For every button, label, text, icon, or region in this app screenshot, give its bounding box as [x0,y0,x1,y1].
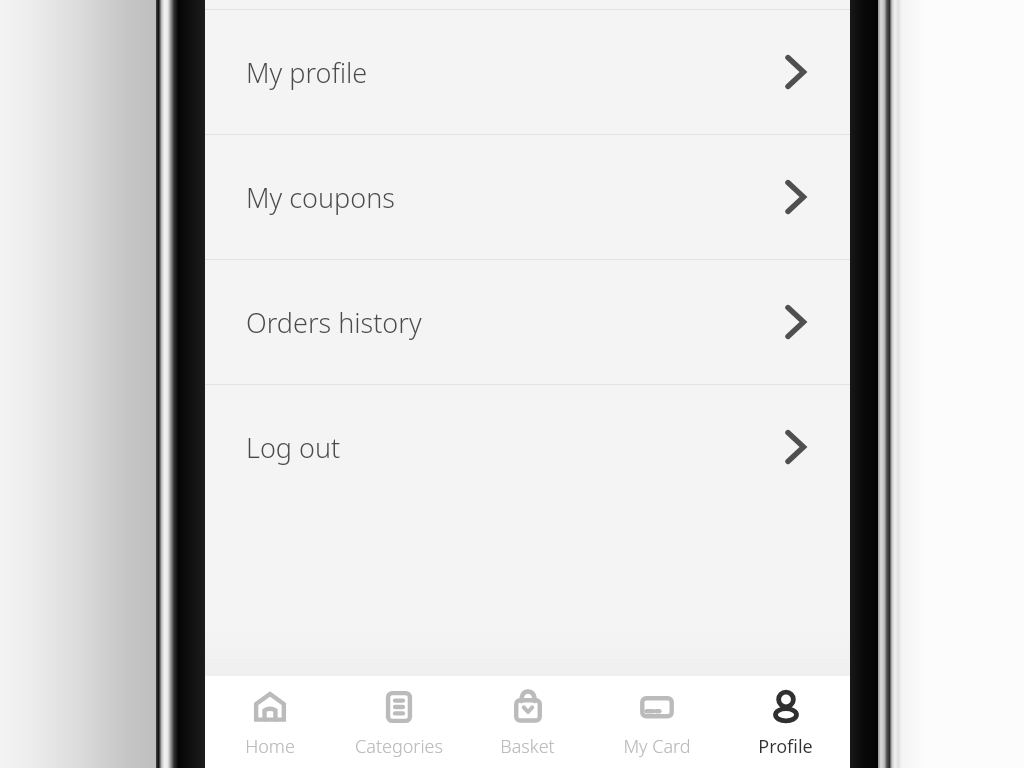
staticText: Basket [500,734,555,759]
button[interactable]: My Card [592,676,721,768]
button[interactable]: Log out [205,385,850,509]
button[interactable]: My coupons [205,135,850,259]
button[interactable]: Orders history [205,260,850,384]
button[interactable]: Home [205,676,334,768]
staticText: Log out [246,429,341,466]
staticText: Orders history [246,304,422,341]
staticText: Categories [355,734,443,759]
button[interactable]: Profile [721,676,850,768]
staticText: Home [245,734,295,759]
button[interactable]: Categories [334,676,463,768]
staticText: My profile [246,54,368,91]
button[interactable]: Basket [463,676,592,768]
button[interactable]: My profile [205,10,850,134]
staticText: My coupons [246,179,395,216]
staticText: Profile [758,734,813,759]
staticText: My Card [623,734,691,759]
